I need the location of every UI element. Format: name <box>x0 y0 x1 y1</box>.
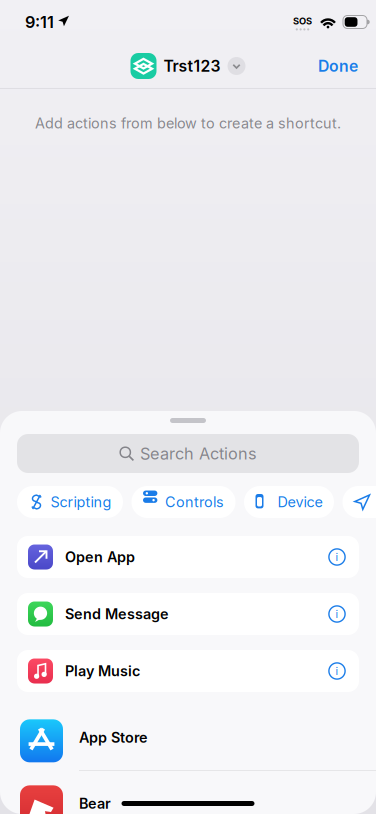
staticText: i <box>335 550 338 563</box>
staticText: i <box>335 664 338 677</box>
staticText: SOS <box>293 15 312 27</box>
staticText: i <box>335 607 338 620</box>
button[interactable]: Open App <box>17 536 359 578</box>
button[interactable]: App Store <box>0 705 376 771</box>
staticText: 9:11 <box>25 12 54 32</box>
staticText: Bear <box>79 795 111 812</box>
button[interactable]: Send Message <box>17 593 359 635</box>
staticText: Trst123 <box>163 56 220 75</box>
button[interactable]: Scripting <box>17 486 123 518</box>
staticText: Add actions from below to create a short… <box>35 115 341 132</box>
staticText: Play Music <box>65 662 140 680</box>
button[interactable]: Done <box>309 49 367 82</box>
staticText: Open App <box>65 548 135 566</box>
button[interactable]: Device <box>244 486 334 518</box>
staticText: Controls <box>165 493 224 511</box>
button[interactable]: Bear <box>0 771 376 814</box>
button[interactable]: Search Actions <box>17 434 359 473</box>
staticText: Send Message <box>65 605 169 623</box>
staticText: Done <box>318 56 358 75</box>
staticText: Scripting <box>50 493 111 511</box>
button[interactable]: Play Music <box>17 650 359 692</box>
button[interactable]: Location <box>342 486 376 518</box>
staticText: Device <box>277 493 322 511</box>
button[interactable]: Trst123 <box>130 47 245 85</box>
staticText: App Store <box>79 729 148 746</box>
staticText: Search Actions <box>140 444 257 463</box>
button[interactable]: Controls <box>131 486 235 518</box>
